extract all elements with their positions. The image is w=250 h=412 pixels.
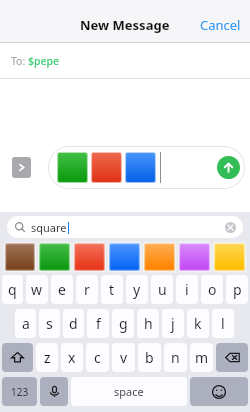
button[interactable]: w [26, 275, 48, 304]
staticText: To: [11, 54, 28, 68]
staticText: $pepe [28, 54, 60, 68]
staticText: j [171, 314, 175, 333]
staticText: k [194, 314, 202, 333]
button[interactable]: To: [11, 54, 60, 68]
button[interactable]: space [71, 377, 187, 406]
button[interactable]: 123 [2, 377, 37, 406]
button[interactable]: o [201, 275, 223, 304]
button[interactable] [5, 243, 35, 271]
button[interactable]: d [63, 309, 84, 338]
staticText: q [8, 280, 17, 299]
staticText: m [195, 348, 209, 367]
staticText: v [120, 348, 128, 367]
button[interactable] [214, 243, 245, 271]
button[interactable]: r [76, 275, 98, 304]
staticText: c [94, 348, 101, 367]
staticText: a [22, 314, 30, 333]
staticText: p [233, 280, 242, 299]
button[interactable]: m [190, 343, 213, 372]
button[interactable]: h [137, 309, 159, 338]
staticText: square [31, 220, 67, 235]
button[interactable]: p [226, 275, 248, 304]
button[interactable]: square [7, 216, 243, 238]
button[interactable]: Send [48, 146, 245, 189]
button[interactable]: Backspace [216, 343, 248, 372]
button[interactable]: g [112, 309, 134, 338]
button[interactable]: v [112, 343, 135, 372]
button[interactable]: x [61, 343, 83, 372]
button[interactable]: Shift [2, 343, 33, 372]
staticText: s [46, 314, 53, 333]
button[interactable] [39, 243, 70, 271]
button[interactable] [125, 152, 156, 183]
button[interactable]: n [164, 343, 187, 372]
staticText: l [221, 314, 225, 333]
button[interactable]: Send [217, 156, 240, 179]
staticText: h [144, 314, 153, 333]
button[interactable]: Emoji [190, 377, 248, 406]
button[interactable] [91, 152, 122, 183]
staticText: y [133, 280, 141, 299]
staticText: space [114, 384, 144, 399]
button[interactable]: t [101, 275, 123, 304]
button[interactable]: i [176, 275, 198, 304]
button[interactable]: a [15, 309, 36, 338]
staticText: f [96, 314, 101, 333]
button[interactable]: z [36, 343, 58, 372]
button[interactable] [179, 243, 210, 271]
staticText: 123 [11, 385, 29, 399]
staticText: g [119, 314, 128, 333]
button[interactable]: Clear [225, 222, 236, 233]
button[interactable]: e [51, 275, 73, 304]
button[interactable]: y [126, 275, 148, 304]
button[interactable] [57, 152, 88, 183]
button[interactable]: u [151, 275, 173, 304]
button[interactable]: s [39, 309, 60, 338]
button[interactable]: b [138, 343, 161, 372]
button[interactable]: Cancel [191, 11, 250, 39]
button[interactable]: q [2, 275, 23, 304]
button[interactable] [74, 243, 105, 271]
staticText: New Message [80, 16, 170, 34]
button[interactable] [144, 243, 175, 271]
staticText: w [31, 280, 43, 299]
button[interactable]: Show apps [12, 157, 31, 178]
button[interactable]: j [162, 309, 184, 338]
staticText: Cancel [200, 16, 241, 34]
button[interactable]: Dictate [40, 377, 68, 406]
staticText: u [158, 280, 167, 299]
staticText: x [68, 348, 76, 367]
button[interactable] [109, 243, 140, 271]
staticText: e [58, 280, 66, 299]
staticText: z [44, 348, 51, 367]
staticText: d [69, 314, 78, 333]
button[interactable]: f [87, 309, 109, 338]
staticText: r [84, 280, 90, 299]
button[interactable]: l [212, 309, 234, 338]
staticText: o [208, 280, 217, 299]
button[interactable]: k [187, 309, 209, 338]
button[interactable]: c [86, 343, 109, 372]
staticText: n [171, 348, 180, 367]
staticText: b [145, 348, 154, 367]
staticText: i [185, 280, 189, 299]
staticText: t [109, 280, 115, 299]
